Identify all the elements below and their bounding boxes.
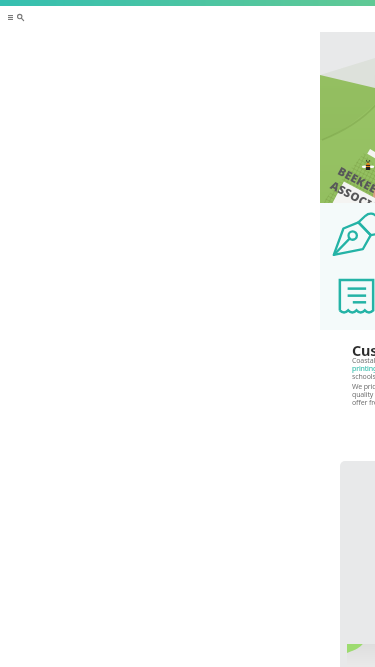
button[interactable]: Search (11, 8, 29, 26)
staticText: We pride ourselves on fast turnaround, t… (352, 382, 375, 407)
button[interactable]: Menu (1, 8, 19, 26)
staticText: BEEKEEPERS (335, 163, 375, 211)
staticText: ASSOCIATION (327, 177, 375, 231)
button[interactable]: Gallery card (340, 461, 375, 667)
staticText: Custom T-Shirts (352, 340, 375, 360)
staticText: Coastal Ink & Thread is a full-service s… (352, 356, 375, 381)
button[interactable]: Custom T-Shirts photo (320, 28, 375, 203)
